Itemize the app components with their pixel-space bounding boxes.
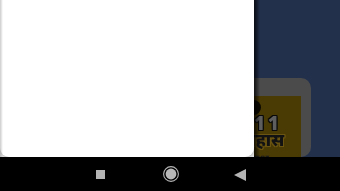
staticText: इतिहास — [229, 127, 284, 150]
staticText: 11 — [255, 110, 283, 136]
staticText: 11 — [254, 110, 282, 136]
staticText: इतिहास — [229, 128, 284, 151]
staticText: 11 — [253, 109, 281, 135]
staticText: इतिहास — [230, 127, 285, 150]
staticText: 11 — [253, 110, 281, 136]
staticText: 11 — [253, 111, 281, 137]
button[interactable]: 11 — [214, 78, 311, 157]
staticText: इतिहास — [230, 129, 285, 152]
button[interactable]: Recent apps — [83, 157, 117, 191]
staticText: 11 — [255, 109, 283, 135]
staticText: इतिहास — [231, 127, 286, 150]
button[interactable]: Home — [154, 157, 188, 191]
staticText: इतिहास — [229, 129, 284, 152]
staticText: 11 — [254, 109, 282, 135]
staticText: 11 — [255, 111, 283, 137]
staticText: प्रश्न — [252, 150, 269, 157]
staticText: इतिहास — [231, 128, 286, 151]
staticText: 11 — [254, 111, 282, 137]
button[interactable]: Back — [223, 157, 257, 191]
staticText: इतिहास — [231, 129, 286, 152]
staticText: इतिहास — [230, 128, 285, 151]
